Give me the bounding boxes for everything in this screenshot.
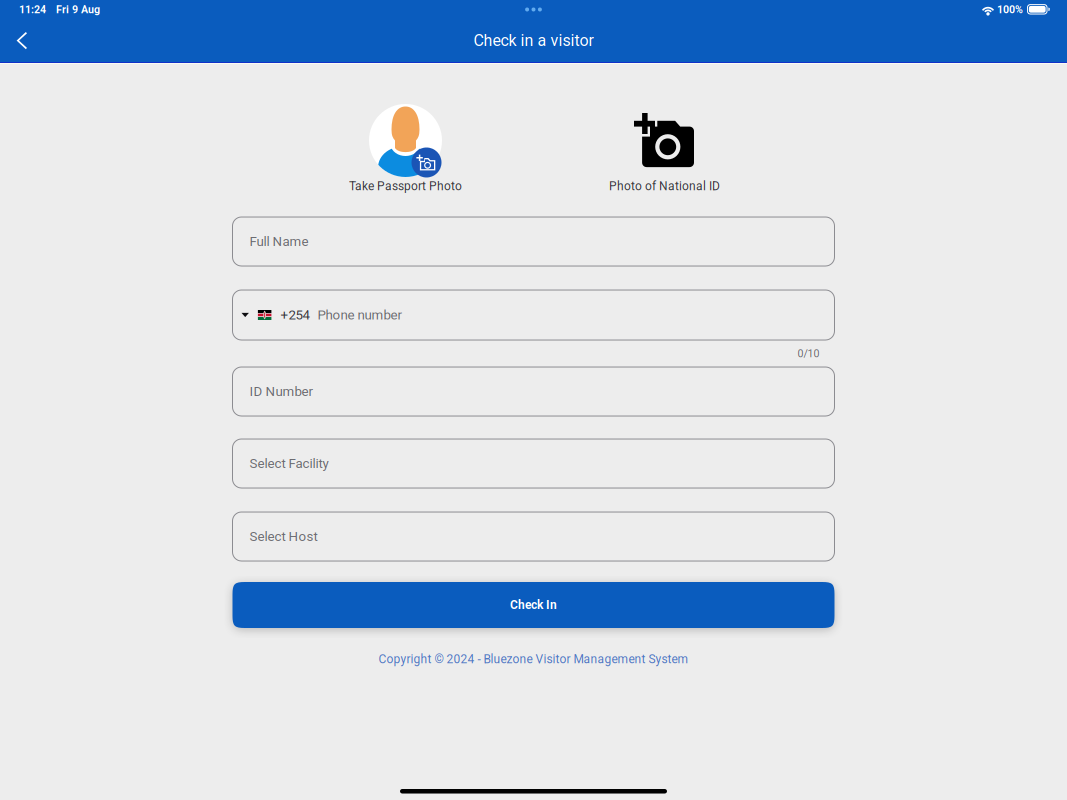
staticText: Take Passport Photo: [349, 179, 462, 193]
staticText: Photo of National ID: [609, 179, 720, 193]
staticText: Full Name: [249, 234, 308, 249]
button[interactable]: Photo of National ID: [561, 104, 767, 202]
staticText: +254: [280, 307, 309, 323]
button[interactable]: Check In: [232, 582, 834, 628]
staticText: Check In: [510, 598, 557, 612]
staticText: Check in a visitor: [473, 31, 593, 50]
button[interactable]: Back: [0, 19, 43, 62]
button[interactable]: Full Name: [232, 217, 834, 266]
button[interactable]: Take Passport Photo: [305, 104, 505, 202]
staticText: Fri 9 Aug: [56, 3, 100, 16]
button[interactable]: Select Host: [232, 512, 834, 561]
button[interactable]: ID Number: [232, 367, 834, 416]
staticText: Copyright © 2024 - Bluezone Visitor Mana…: [378, 652, 688, 666]
staticText: 11:24: [19, 3, 46, 16]
staticText: 100%: [997, 3, 1023, 16]
staticText: 0/10: [797, 347, 819, 360]
staticText: Select Host: [249, 529, 317, 544]
staticText: Phone number: [317, 307, 402, 323]
button[interactable]: +254: [232, 290, 834, 340]
staticText: Select Facility: [249, 456, 328, 471]
staticText: ID Number: [249, 384, 313, 399]
button[interactable]: Select Facility: [232, 439, 834, 488]
